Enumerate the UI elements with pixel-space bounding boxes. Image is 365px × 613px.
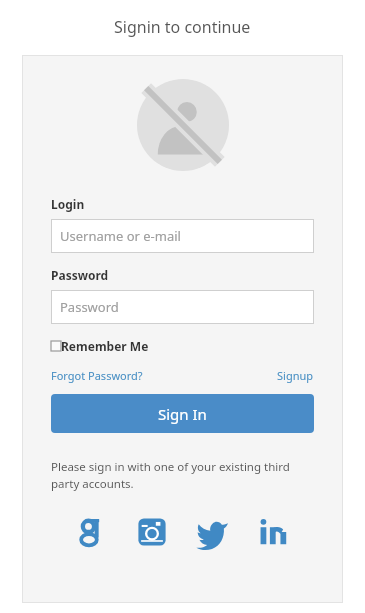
staticText: Signup: [277, 368, 314, 383]
staticText: Login: [51, 196, 85, 212]
staticText: Forgot Password?: [51, 368, 143, 383]
staticText: Username or e-mail: [60, 227, 181, 245]
staticText: Password: [51, 267, 109, 283]
button[interactable]: Sign in with Twitter: [191, 510, 235, 554]
staticText: Please sign in with one of your existing…: [51, 459, 314, 492]
button[interactable]: Signup: [277, 368, 314, 383]
button[interactable]: Sign in with Instagram: [130, 510, 174, 554]
staticText: Signin to continue: [114, 16, 251, 38]
button[interactable]: Sign In: [51, 394, 314, 433]
button[interactable]: Forgot Password?: [51, 368, 143, 383]
button[interactable]: Remember Me: [51, 338, 149, 354]
staticText: Remember Me: [61, 338, 149, 354]
button[interactable]: Sign in with LinkedIn: [253, 510, 297, 554]
staticText: Password: [60, 298, 119, 316]
button[interactable]: Username or e-mail: [51, 219, 314, 253]
button[interactable]: Sign in with Google: [68, 510, 112, 554]
staticText: Sign In: [158, 404, 207, 424]
button[interactable]: Password: [51, 290, 314, 324]
